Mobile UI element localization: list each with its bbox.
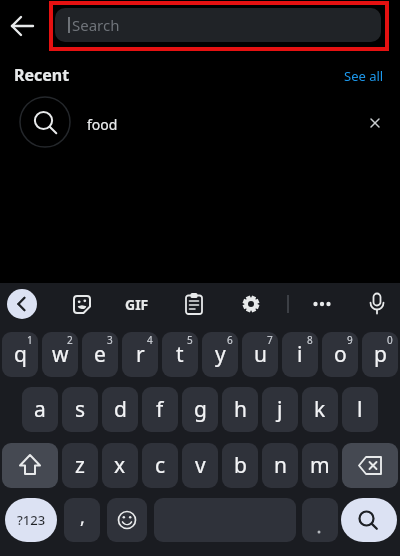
button[interactable]: food [0, 96, 400, 148]
staticText: n [274, 451, 287, 480]
staticText: x [114, 451, 126, 480]
staticText: 8 [307, 333, 313, 347]
staticText: 6 [227, 333, 233, 347]
button[interactable]: u [242, 332, 278, 377]
button[interactable] [2, 443, 58, 488]
staticText: 9 [347, 333, 353, 347]
button[interactable]: , [64, 498, 100, 542]
button[interactable] [68, 289, 98, 319]
staticText: Recent [14, 64, 70, 86]
staticText: 1 [27, 333, 33, 347]
button[interactable] [360, 108, 390, 138]
button[interactable] [307, 289, 337, 319]
staticText: o [334, 340, 347, 369]
button[interactable]: p [362, 332, 398, 377]
button[interactable] [6, 10, 40, 44]
staticText: e [94, 340, 106, 369]
staticText: , [80, 505, 85, 530]
staticText: 3 [107, 333, 113, 347]
staticText: 5 [187, 333, 193, 347]
staticText: b [234, 451, 247, 480]
button[interactable]: z [62, 443, 98, 488]
button[interactable]: r [122, 332, 158, 377]
button[interactable]: s [62, 387, 98, 432]
staticText: a [34, 395, 46, 424]
button[interactable]: t [162, 332, 198, 377]
staticText: GIF [125, 295, 149, 314]
staticText: w [52, 340, 69, 369]
button[interactable]: c [142, 443, 178, 488]
staticText: t [176, 340, 184, 369]
button[interactable]: b [222, 443, 258, 488]
staticText: f [156, 395, 164, 424]
button[interactable] [342, 443, 398, 488]
button[interactable] [107, 498, 147, 542]
staticText: p [374, 340, 387, 369]
staticText: z [75, 451, 85, 480]
button[interactable]: h [222, 387, 258, 432]
button[interactable]: q [2, 332, 38, 377]
button[interactable]: g [182, 387, 218, 432]
button[interactable]: ?123 [5, 498, 57, 542]
staticText: g [194, 395, 207, 424]
staticText: r [136, 340, 145, 369]
button[interactable]: e [82, 332, 118, 377]
staticText: l [357, 395, 363, 424]
button[interactable] [7, 289, 37, 319]
button[interactable]: y [202, 332, 238, 377]
staticText: i [297, 340, 303, 369]
staticText: h [234, 395, 247, 424]
button[interactable]: x [102, 443, 138, 488]
staticText: 0 [387, 333, 393, 347]
button[interactable]: n [262, 443, 298, 488]
button[interactable]: j [262, 387, 298, 432]
button[interactable]: See all [334, 64, 394, 88]
staticText: m [310, 451, 330, 480]
button[interactable]: i [282, 332, 318, 377]
button[interactable]: d [102, 387, 138, 432]
staticText: ?123 [17, 511, 46, 529]
button[interactable] [179, 289, 209, 319]
button[interactable]: o [322, 332, 358, 377]
button[interactable]: Search [55, 8, 381, 42]
button[interactable] [341, 498, 397, 542]
button[interactable]: GIF [118, 290, 155, 318]
staticText: c [155, 451, 166, 480]
button[interactable] [302, 498, 338, 542]
button[interactable]: m [302, 443, 338, 488]
staticText: 7 [267, 333, 273, 347]
button[interactable]: k [302, 387, 338, 432]
staticText: See all [344, 67, 384, 85]
button[interactable] [236, 289, 266, 319]
staticText: j [277, 395, 283, 424]
staticText: food [87, 115, 118, 134]
button[interactable]: v [182, 443, 218, 488]
staticText: v [195, 451, 206, 480]
button[interactable]: f [142, 387, 178, 432]
button[interactable]: w [42, 332, 78, 377]
staticText: 2 [67, 333, 73, 347]
staticText: 4 [147, 333, 153, 347]
staticText: q [14, 340, 27, 369]
staticText: u [254, 340, 267, 369]
button[interactable] [362, 289, 392, 319]
staticText: d [114, 395, 127, 424]
staticText: Search [72, 15, 120, 35]
button[interactable]: a [22, 387, 58, 432]
staticText: y [215, 340, 226, 369]
staticText: s [75, 395, 86, 424]
staticText: k [314, 395, 326, 424]
button[interactable]: l [342, 387, 378, 432]
